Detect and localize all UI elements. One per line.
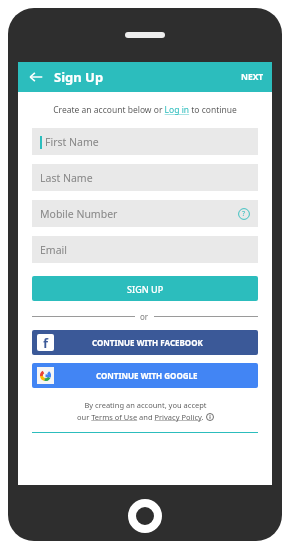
- staticText: Mobile Number: [40, 207, 118, 221]
- button[interactable]: SIGN UP: [32, 276, 258, 301]
- button[interactable]: Back: [24, 65, 48, 89]
- staticText: CONTINUE WITH FACEBOOK: [92, 337, 203, 348]
- staticText: NEXT: [241, 71, 264, 83]
- button[interactable]: Mobile Number: [32, 200, 258, 227]
- button[interactable]: Home: [128, 499, 162, 533]
- button[interactable]: f: [32, 330, 258, 355]
- staticText: Email: [40, 243, 67, 257]
- staticText: or: [140, 311, 149, 322]
- button[interactable]: More information: [206, 413, 214, 421]
- staticText: First Name: [45, 135, 99, 149]
- staticText: ?: [242, 209, 246, 219]
- staticText: By creating an account, you accept: [84, 400, 207, 410]
- button[interactable]: Help with mobile number: [238, 208, 250, 220]
- button[interactable]: NEXT: [233, 65, 272, 89]
- staticText: Sign Up: [54, 68, 104, 86]
- button[interactable]: CONTINUE WITH GOOGLE: [32, 363, 258, 388]
- staticText: Last Name: [40, 171, 93, 185]
- staticText: SIGN UP: [127, 283, 164, 295]
- staticText: Create an account below or Log in to con…: [53, 104, 237, 116]
- staticText: CONTINUE WITH GOOGLE: [96, 370, 198, 381]
- button[interactable]: Last Name: [32, 164, 258, 191]
- staticText: our Terms of Use and Privacy Policy.: [77, 412, 206, 422]
- button[interactable]: Email: [32, 236, 258, 263]
- button[interactable]: First Name: [32, 128, 258, 155]
- staticText: f: [43, 334, 49, 351]
